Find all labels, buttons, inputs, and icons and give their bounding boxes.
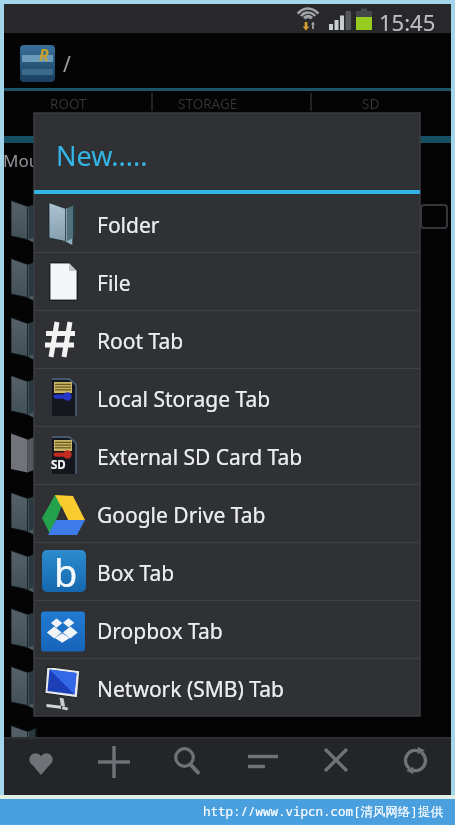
button[interactable] [14, 740, 68, 788]
button[interactable]: Network (SMB) Tab [34, 658, 420, 716]
staticText: Dropbox Tab [97, 617, 223, 646]
button[interactable]: Local Storage Tab [34, 368, 420, 426]
button[interactable]: File [34, 252, 420, 310]
button[interactable] [88, 740, 142, 788]
button[interactable]: Root Tab [34, 310, 420, 368]
staticText: b [54, 546, 78, 598]
staticText: Network (SMB) Tab [97, 675, 284, 704]
button[interactable]: SD [34, 426, 420, 484]
staticText: Box Tab [97, 559, 175, 588]
staticText: 15:45 [379, 7, 436, 37]
button[interactable]: b [34, 542, 420, 600]
staticText: http://www.vipcn.com[清风网络]提供 [203, 803, 444, 820]
staticText: New..... [56, 137, 148, 174]
staticText: File [97, 269, 131, 298]
button[interactable] [309, 740, 363, 788]
staticText: / [63, 50, 71, 79]
staticText: R [39, 44, 49, 66]
button[interactable] [161, 740, 215, 788]
button[interactable]: SD [362, 95, 380, 113]
staticText: External SD Card Tab [97, 443, 303, 472]
staticText: Mou [3, 149, 40, 172]
staticText: Local Storage Tab [97, 385, 271, 414]
button[interactable] [236, 740, 290, 788]
button[interactable]: Google Drive Tab [34, 484, 420, 542]
button[interactable]: Dropbox Tab [34, 600, 420, 658]
button[interactable] [388, 740, 442, 788]
button[interactable]: Folder [34, 194, 420, 252]
staticText: Folder [97, 211, 160, 240]
button[interactable]: ROOT [50, 95, 87, 113]
button[interactable]: STORAGE [178, 95, 238, 113]
staticText: Root Tab [97, 327, 184, 356]
staticText: SD [51, 457, 66, 473]
staticText: Google Drive Tab [97, 501, 266, 530]
